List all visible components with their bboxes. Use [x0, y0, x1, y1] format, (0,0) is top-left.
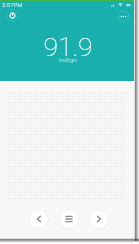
button[interactable]: Menu: [59, 209, 79, 229]
button[interactable]: Next: [89, 209, 109, 229]
button[interactable]: Power: [6, 9, 19, 22]
staticText: indigo: [59, 56, 77, 63]
button[interactable]: More options: [117, 10, 130, 23]
staticText: 91.9: [43, 31, 93, 62]
staticText: 2:57PM: [2, 1, 23, 8]
button[interactable]: Previous: [29, 209, 49, 229]
